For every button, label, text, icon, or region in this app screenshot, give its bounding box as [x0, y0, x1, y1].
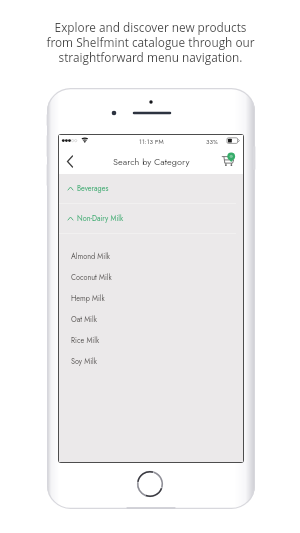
staticText: Oat Milk [71, 314, 97, 325]
button[interactable]: Back [59, 148, 81, 174]
staticText: 33% [206, 137, 218, 146]
staticText: Rice Milk [71, 335, 100, 346]
button[interactable]: Rice Milk [59, 330, 243, 351]
staticText: 11:13 PM [139, 137, 164, 146]
button[interactable]: Beverages [59, 174, 243, 203]
button[interactable]: Soy Milk [59, 351, 243, 372]
staticText: Almond Milk [71, 251, 111, 262]
button[interactable]: Almond Milk [59, 246, 243, 267]
button[interactable]: Non-Dairy Milk [59, 204, 243, 233]
staticText: Coconut Milk [71, 272, 112, 283]
button[interactable]: Hemp Milk [59, 288, 243, 309]
staticText: Explore and discover new products from S… [46, 19, 255, 66]
staticText: Beverages [77, 183, 109, 194]
staticText: Search by Category [113, 155, 190, 168]
button[interactable]: Coconut Milk [59, 267, 243, 288]
staticText: Soy Milk [71, 356, 97, 367]
staticText: Hemp Milk [71, 293, 105, 304]
button[interactable]: Oat Milk [59, 309, 243, 330]
staticText: Non-Dairy Milk [77, 213, 124, 224]
button[interactable]: Shopping cart [221, 152, 237, 170]
